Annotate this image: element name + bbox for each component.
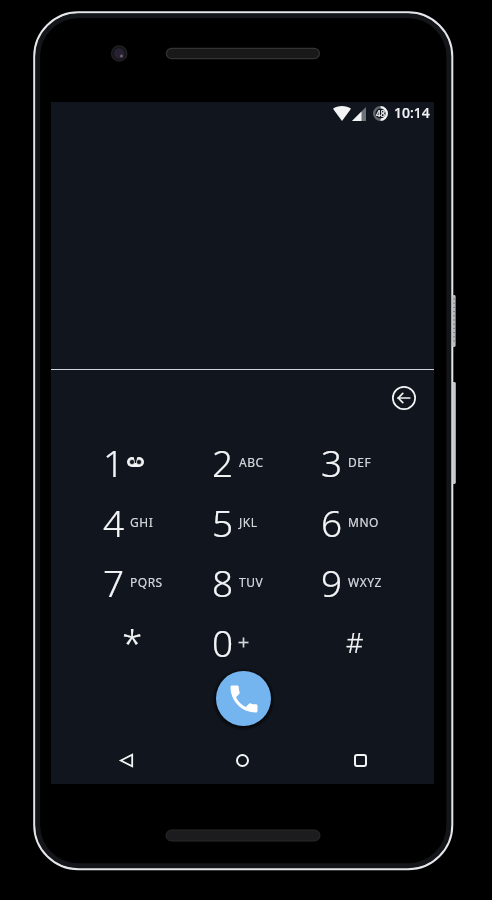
staticText: 6 [321, 497, 343, 547]
button[interactable]: 1 [51, 432, 160, 492]
staticText: TUV [239, 574, 264, 590]
button[interactable]: 6 [269, 492, 378, 552]
button[interactable]: Back [102, 736, 150, 784]
button[interactable]: 5 [160, 492, 269, 552]
staticText: 1 [103, 437, 125, 487]
staticText: 5 [212, 497, 234, 547]
button[interactable]: # [269, 612, 378, 672]
button[interactable]: 2 [160, 432, 269, 492]
button[interactable]: Delete [387, 381, 421, 415]
button[interactable]: 4 [51, 492, 160, 552]
staticText: PQRS [130, 574, 163, 590]
staticText: WXYZ [348, 574, 382, 590]
staticText: MNO [348, 514, 379, 530]
button[interactable]: 8 [160, 552, 269, 612]
button[interactable]: * [51, 612, 160, 672]
button[interactable]: 7 [51, 552, 160, 612]
staticText: 8 [212, 557, 234, 607]
staticText: JKL [239, 514, 258, 530]
staticText: 10:14 [394, 103, 430, 122]
button[interactable]: 3 [269, 432, 378, 492]
button[interactable]: 9 [269, 552, 378, 612]
staticText: 7 [103, 557, 125, 607]
staticText: 2 [212, 437, 234, 487]
staticText: 48 [376, 108, 386, 119]
staticText: 0 [212, 617, 234, 667]
staticText: 4 [103, 497, 125, 547]
staticText: DEF [348, 454, 372, 470]
staticText: GHI [130, 514, 154, 530]
staticText: # [346, 624, 364, 661]
button[interactable]: Recent apps [336, 736, 384, 784]
button[interactable]: Home [218, 736, 266, 784]
staticText: 3 [321, 437, 343, 487]
button[interactable]: 0 [160, 612, 269, 672]
staticText: * [122, 617, 143, 667]
staticText: 9 [321, 557, 343, 607]
staticText: ABC [239, 454, 264, 470]
button[interactable]: Call [216, 671, 271, 726]
